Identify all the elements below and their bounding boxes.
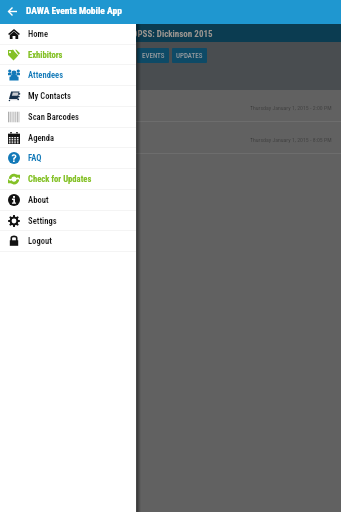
button[interactable]: Thursday January 1, 2015 - 8:05 PM (0, 122, 341, 153)
button[interactable]: Back (0, 0, 25, 24)
staticText: About (28, 195, 49, 205)
staticText: Settings (28, 216, 57, 226)
button[interactable]: Logout (0, 231, 136, 251)
button[interactable]: FAQ (0, 148, 136, 168)
staticText: EVENTS (142, 52, 165, 60)
button[interactable]: Home (0, 24, 136, 44)
button[interactable]: My Contacts (0, 86, 136, 106)
staticText: UPDATES (176, 52, 203, 60)
button[interactable]: EVENTS (137, 48, 169, 63)
staticText: Logout (28, 236, 52, 246)
staticText: Scan Barcodes (28, 112, 79, 122)
staticText: Thursday January 1, 2015 - 8:05 PM (250, 137, 332, 144)
button[interactable]: Attendees (0, 65, 136, 85)
button[interactable]: UPDATES (172, 48, 207, 63)
staticText: FAQ (28, 153, 42, 163)
button[interactable]: Settings (0, 211, 136, 230)
staticText: My Contacts (28, 91, 71, 101)
staticText: Check for Updates (28, 174, 92, 184)
button[interactable]: Agenda (0, 128, 136, 147)
button[interactable]: Scan Barcodes (0, 107, 136, 127)
button[interactable]: Exhibitors (0, 45, 136, 64)
button[interactable]: Check for Updates (0, 169, 136, 189)
staticText: Exhibitors (28, 50, 63, 60)
staticText: Agenda (28, 133, 55, 143)
button[interactable]: About (0, 190, 136, 210)
button[interactable]: Thursday January 1, 2015 - 2:00 PM (0, 90, 341, 121)
staticText: DAWA Events Mobile App (26, 5, 122, 16)
staticText: Attendees (28, 70, 64, 80)
staticText: Home (28, 29, 49, 39)
staticText: Thursday January 1, 2015 - 2:00 PM (250, 105, 332, 112)
staticText: OPSS: Dickinson 2015 (132, 29, 213, 40)
